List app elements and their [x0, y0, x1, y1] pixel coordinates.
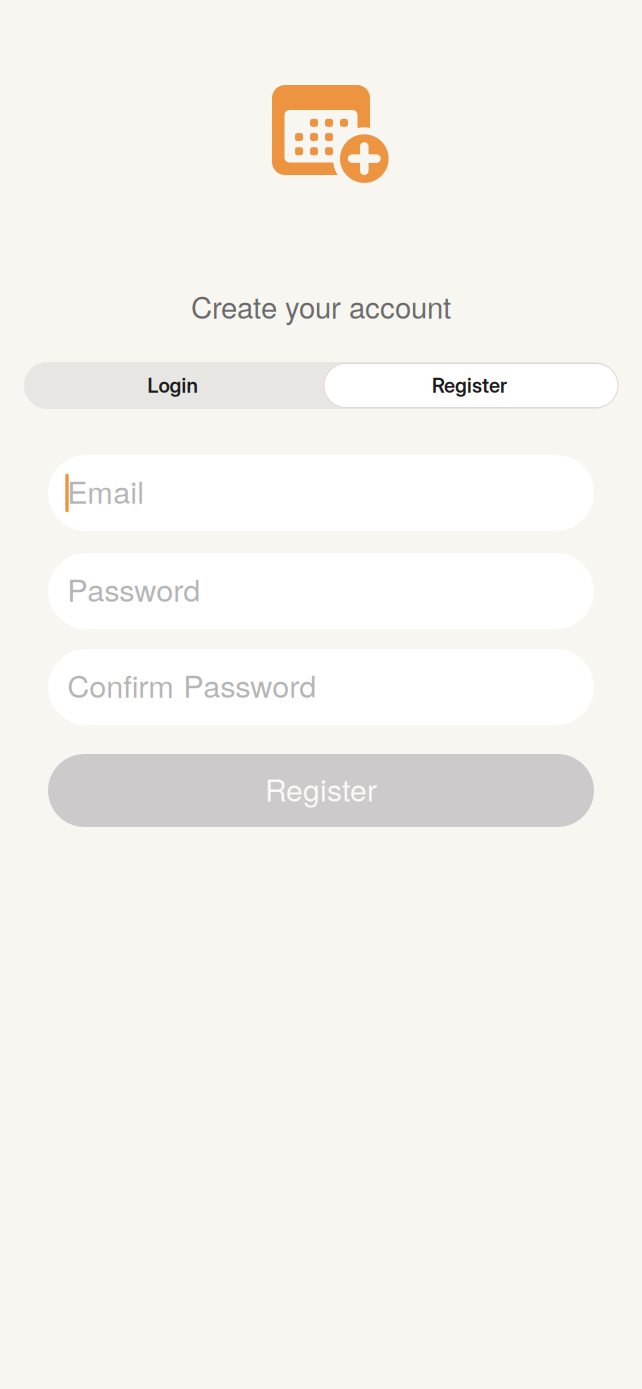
- button[interactable]: Register: [48, 754, 594, 827]
- staticText: Register: [265, 767, 377, 810]
- button[interactable]: Email: [48, 455, 594, 531]
- staticText: Register: [432, 373, 507, 398]
- staticText: Email: [67, 468, 144, 512]
- staticText: Password: [67, 566, 200, 610]
- button[interactable]: Password: [48, 553, 594, 629]
- staticText: Confirm Password: [67, 662, 316, 706]
- button[interactable]: Register: [24, 362, 321, 409]
- staticText: Create your account: [191, 285, 451, 327]
- button[interactable]: Confirm Password: [48, 649, 594, 725]
- button[interactable]: Login: [24, 362, 321, 409]
- staticText: Login: [147, 373, 197, 398]
